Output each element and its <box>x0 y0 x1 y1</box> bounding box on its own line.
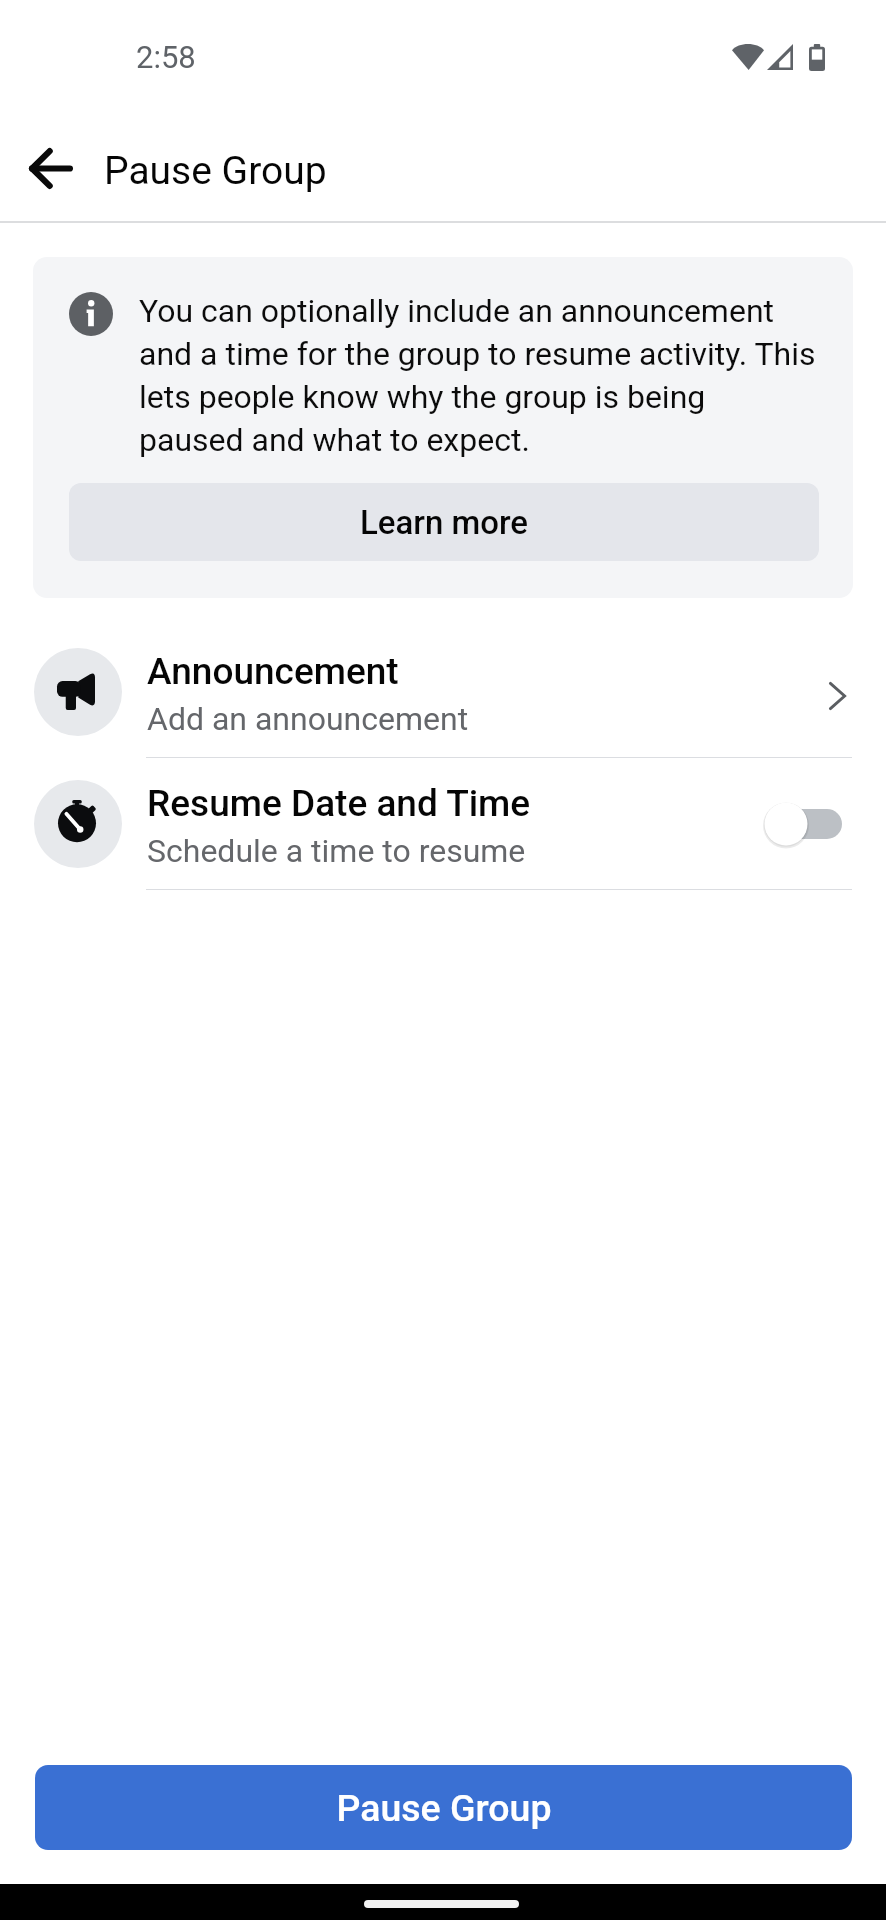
staticText: Pause Group <box>104 148 327 194</box>
staticText: You can optionally include an announceme… <box>139 292 817 459</box>
button[interactable]: Learn more <box>69 483 819 561</box>
staticText: Announcement <box>147 650 399 693</box>
staticText: Learn more <box>360 503 529 542</box>
staticText: 2:58 <box>136 39 196 75</box>
staticText: Pause Group <box>336 1786 552 1830</box>
staticText: Schedule a time to resume <box>147 832 526 870</box>
button[interactable]: Resume date and time toggle <box>759 799 851 849</box>
staticText: Resume Date and Time <box>147 782 531 825</box>
button[interactable]: Announcement <box>0 626 886 758</box>
staticText: Add an announcement <box>147 700 469 738</box>
button[interactable]: Resume Date and Time <box>0 758 886 890</box>
button[interactable]: Back <box>18 135 84 201</box>
button[interactable]: Pause Group <box>35 1765 852 1850</box>
